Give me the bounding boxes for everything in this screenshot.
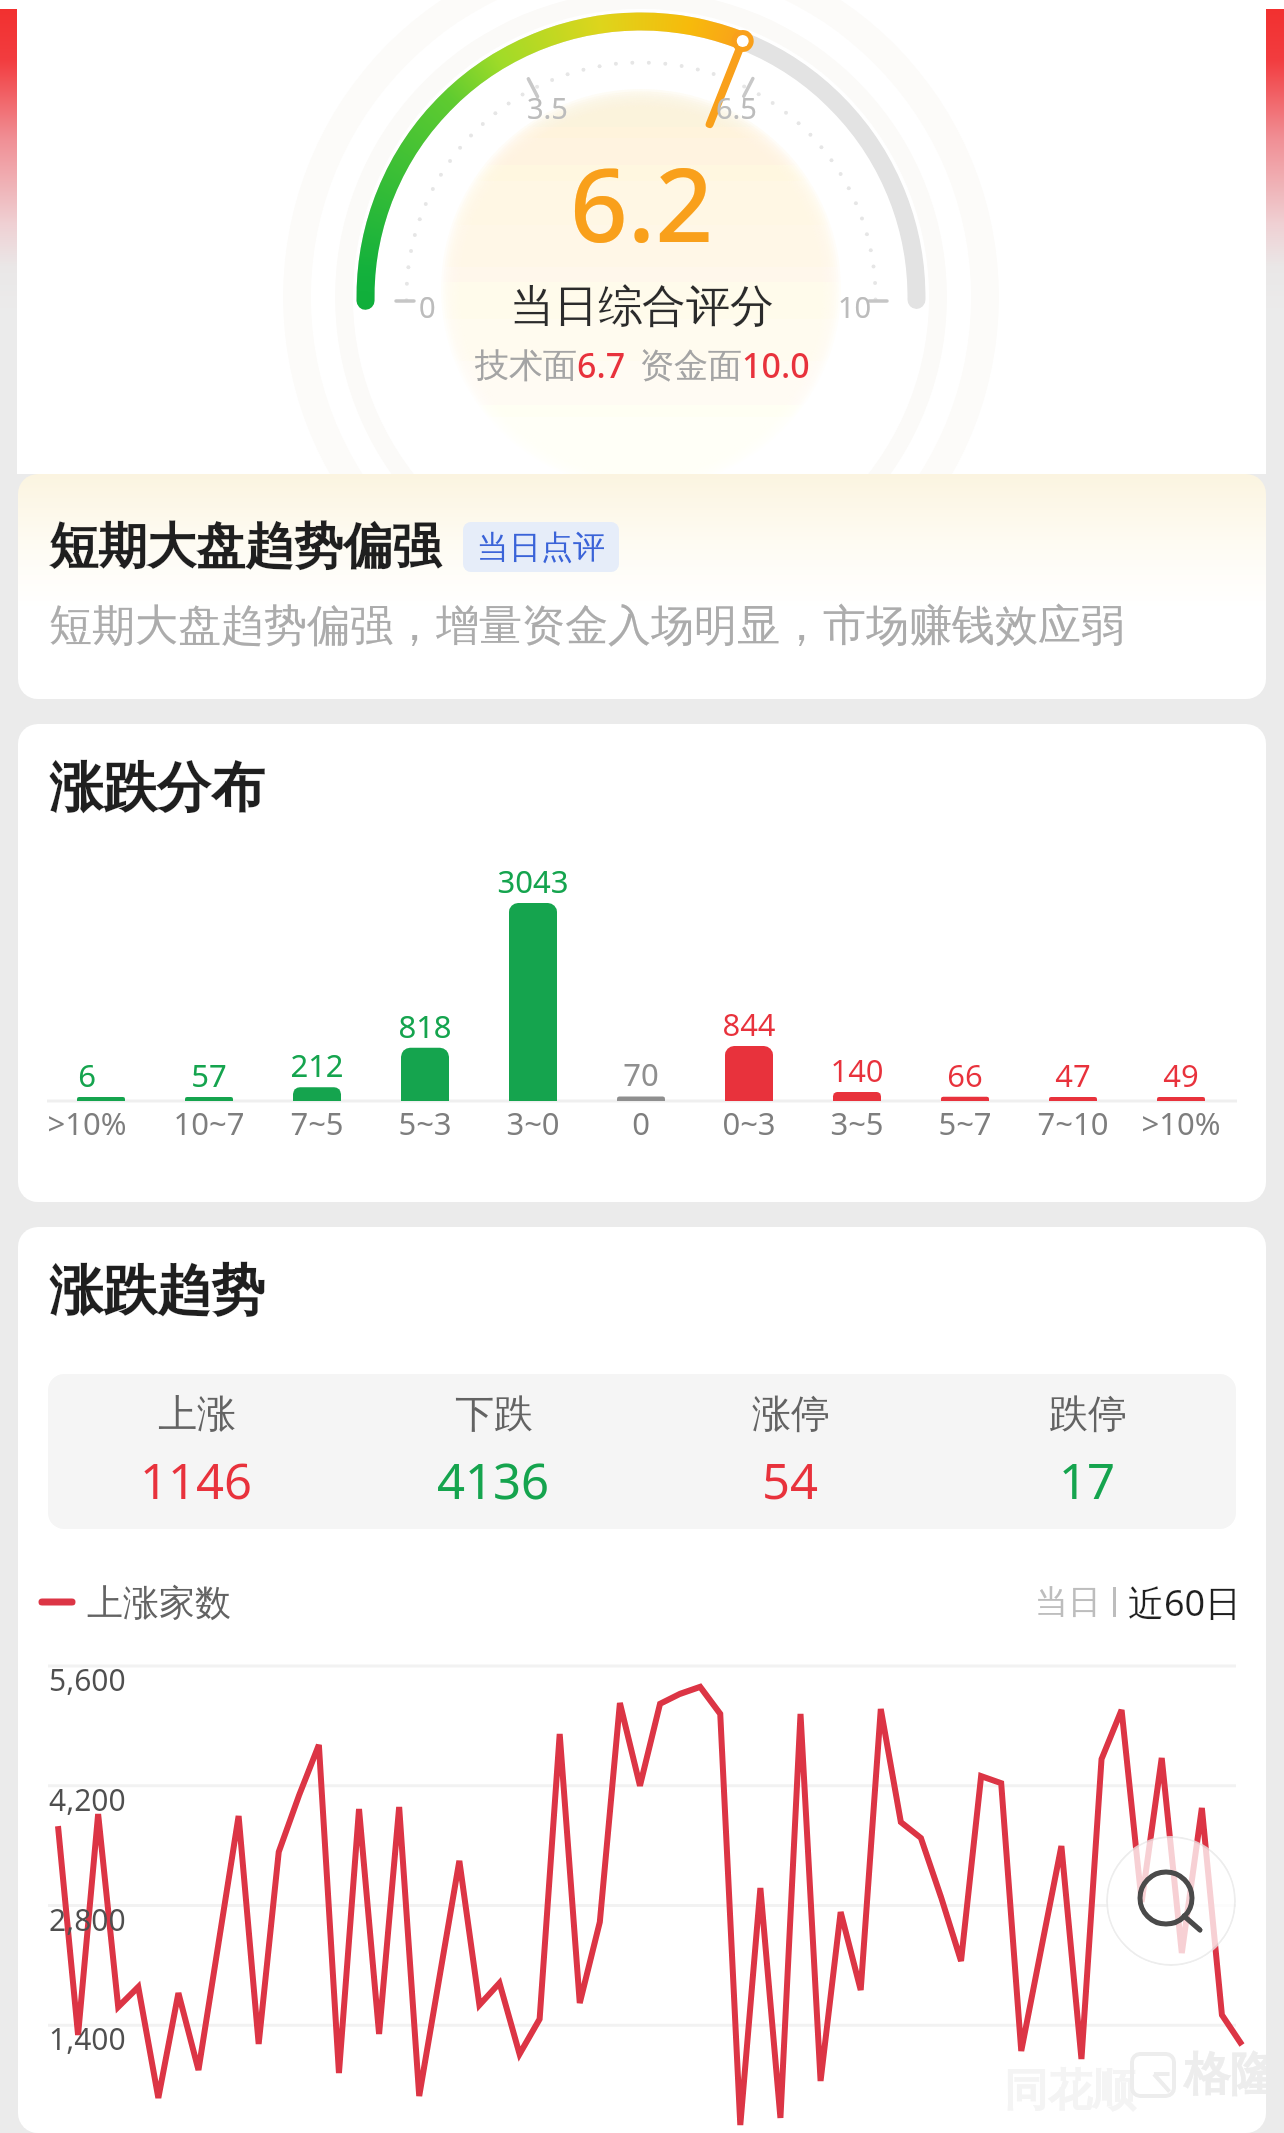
staticText: 3043	[479, 860, 587, 902]
staticText: 5~7	[911, 1102, 1019, 1144]
staticText: 1146	[140, 1447, 253, 1514]
staticText: 47	[1019, 1054, 1127, 1096]
button[interactable]: 跌停	[939, 1389, 1236, 1514]
staticText: 6	[33, 1054, 141, 1096]
staticText: 短期大盘趋势偏强	[49, 516, 441, 578]
staticText: 上涨	[158, 1389, 236, 1438]
staticText: 当日点评	[477, 527, 605, 567]
staticText: 3.5	[527, 88, 568, 127]
button[interactable]: 短期大盘趋势偏强	[18, 474, 1266, 699]
staticText: 49	[1127, 1054, 1235, 1096]
staticText: 当日综合评分	[510, 279, 774, 334]
staticText: 资金面	[640, 344, 742, 387]
staticText: 跌停	[1049, 1389, 1127, 1438]
staticText: 5,600	[49, 1659, 126, 1700]
staticText: 70	[587, 1053, 695, 1095]
staticText: 短期大盘趋势偏强，增量资金入场明显，市场赚钱效应弱	[49, 599, 1124, 653]
button[interactable]: Zoom chart	[1106, 1836, 1236, 1966]
button[interactable]: 近60日	[1128, 1578, 1242, 1627]
staticText: 212	[263, 1044, 371, 1086]
staticText: 818	[371, 1005, 479, 1047]
button[interactable]: 下跌	[345, 1389, 642, 1514]
staticText: 3~0	[479, 1102, 587, 1144]
staticText: 844	[695, 1003, 803, 1045]
staticText: 0	[419, 287, 436, 326]
staticText: 10.0	[742, 342, 810, 388]
staticText: 7~5	[263, 1102, 371, 1144]
staticText: 4,200	[49, 1779, 126, 1820]
staticText: 140	[803, 1049, 911, 1091]
button[interactable]: 上涨	[48, 1389, 345, 1514]
staticText: 涨停	[752, 1389, 830, 1438]
staticText: 10	[838, 287, 872, 326]
staticText: 7~10	[1019, 1102, 1127, 1144]
staticText: 1,400	[49, 2018, 126, 2059]
staticText: 2,800	[49, 1899, 126, 1940]
staticText: 57	[155, 1054, 263, 1096]
staticText: 17	[1059, 1447, 1116, 1514]
staticText: 5~3	[371, 1102, 479, 1144]
staticText: 66	[911, 1054, 1019, 1096]
staticText: 54	[762, 1447, 819, 1514]
staticText: 0	[587, 1102, 695, 1144]
staticText: 技术面	[475, 344, 577, 387]
staticText: 4136	[437, 1447, 550, 1514]
staticText: 当日	[1035, 1581, 1101, 1623]
staticText: 下跌	[455, 1389, 533, 1438]
staticText: 格隆汇	[1184, 2046, 1266, 2104]
staticText: 上涨家数	[87, 1580, 231, 1625]
staticText: 6.2	[570, 134, 714, 272]
button[interactable]: 涨停	[642, 1389, 939, 1514]
staticText: >10%	[33, 1102, 141, 1144]
staticText: 6.5	[716, 88, 757, 127]
staticText: 0~3	[695, 1102, 803, 1144]
staticText: >10%	[1127, 1102, 1235, 1144]
staticText: 涨跌分布	[49, 754, 265, 822]
staticText: 同花顺	[1004, 2063, 1136, 2118]
staticText: 6.7	[577, 342, 626, 388]
staticText: 10~7	[155, 1102, 263, 1144]
button[interactable]: 当日	[1035, 1581, 1101, 1623]
staticText: 近60日	[1128, 1578, 1242, 1627]
staticText: 涨跌趋势	[49, 1257, 265, 1325]
staticText: 3~5	[803, 1102, 911, 1144]
